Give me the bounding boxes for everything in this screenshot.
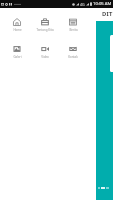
button[interactable]: Video: [31, 45, 59, 59]
button[interactable]: Home: [3, 18, 31, 32]
staticText: Kontak: [68, 55, 78, 59]
staticText: Tentang Kita: [36, 28, 54, 32]
button[interactable]: Kontak: [59, 45, 87, 59]
button[interactable]: Berita: [59, 18, 87, 32]
staticText: Galeri: [13, 55, 22, 59]
staticText: DITF: [102, 10, 113, 18]
staticText: Berita: [69, 28, 78, 32]
staticText: Video: [41, 55, 49, 59]
staticText: 4G: [80, 2, 85, 7]
button[interactable]: Galeri: [3, 45, 31, 59]
staticText: Home: [13, 28, 22, 32]
staticText: 10:05 AM: [93, 1, 112, 7]
button[interactable]: Tentang Kita: [31, 18, 59, 32]
